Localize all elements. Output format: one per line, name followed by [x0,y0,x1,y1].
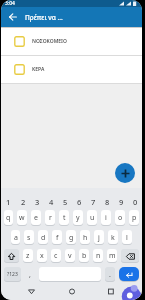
staticText: e [34,213,38,223]
staticText: y [76,213,80,223]
staticText: o [118,213,123,223]
staticText: f [56,233,59,243]
staticText: w [19,213,25,223]
staticText: 1 [6,197,11,207]
staticText: ΚΕΡΑ [32,66,45,73]
staticText: ?123 [7,271,18,278]
staticText: g [69,233,74,243]
staticText: 8 [105,197,110,207]
staticText: q [6,213,11,223]
staticText: s [27,233,31,243]
staticText: r [49,213,52,223]
staticText: i [105,213,107,223]
staticText: 6 [77,197,82,207]
staticText: 4 [49,197,54,207]
staticText: 3 [35,197,40,207]
staticText: 2 [21,197,26,207]
staticText: u [90,213,95,223]
staticText: j [98,233,100,243]
staticText: ΝΟΣΟΚΟΜΕΙΟ [32,38,67,45]
staticText: . [109,270,111,280]
staticText: 3:04 [5,0,15,7]
staticText: 0 [133,197,138,207]
staticText: 5 [63,197,68,207]
staticText: c [54,251,58,261]
staticText: Πρέπει να ... [25,13,63,22]
staticText: n [96,251,101,261]
staticText: 7 [91,197,96,207]
staticText: z [26,251,30,261]
staticText: h [83,233,88,243]
staticText: , [29,270,31,280]
staticText: m [109,251,116,261]
staticText: d [41,233,46,243]
staticText: k [111,233,115,243]
staticText: t [63,213,66,223]
staticText: l [126,233,128,243]
staticText: p [132,213,137,223]
staticText: a [14,233,18,243]
staticText: b [82,251,87,261]
staticText: x [40,251,44,261]
staticText: 9 [119,197,124,207]
staticText: v [68,251,72,261]
